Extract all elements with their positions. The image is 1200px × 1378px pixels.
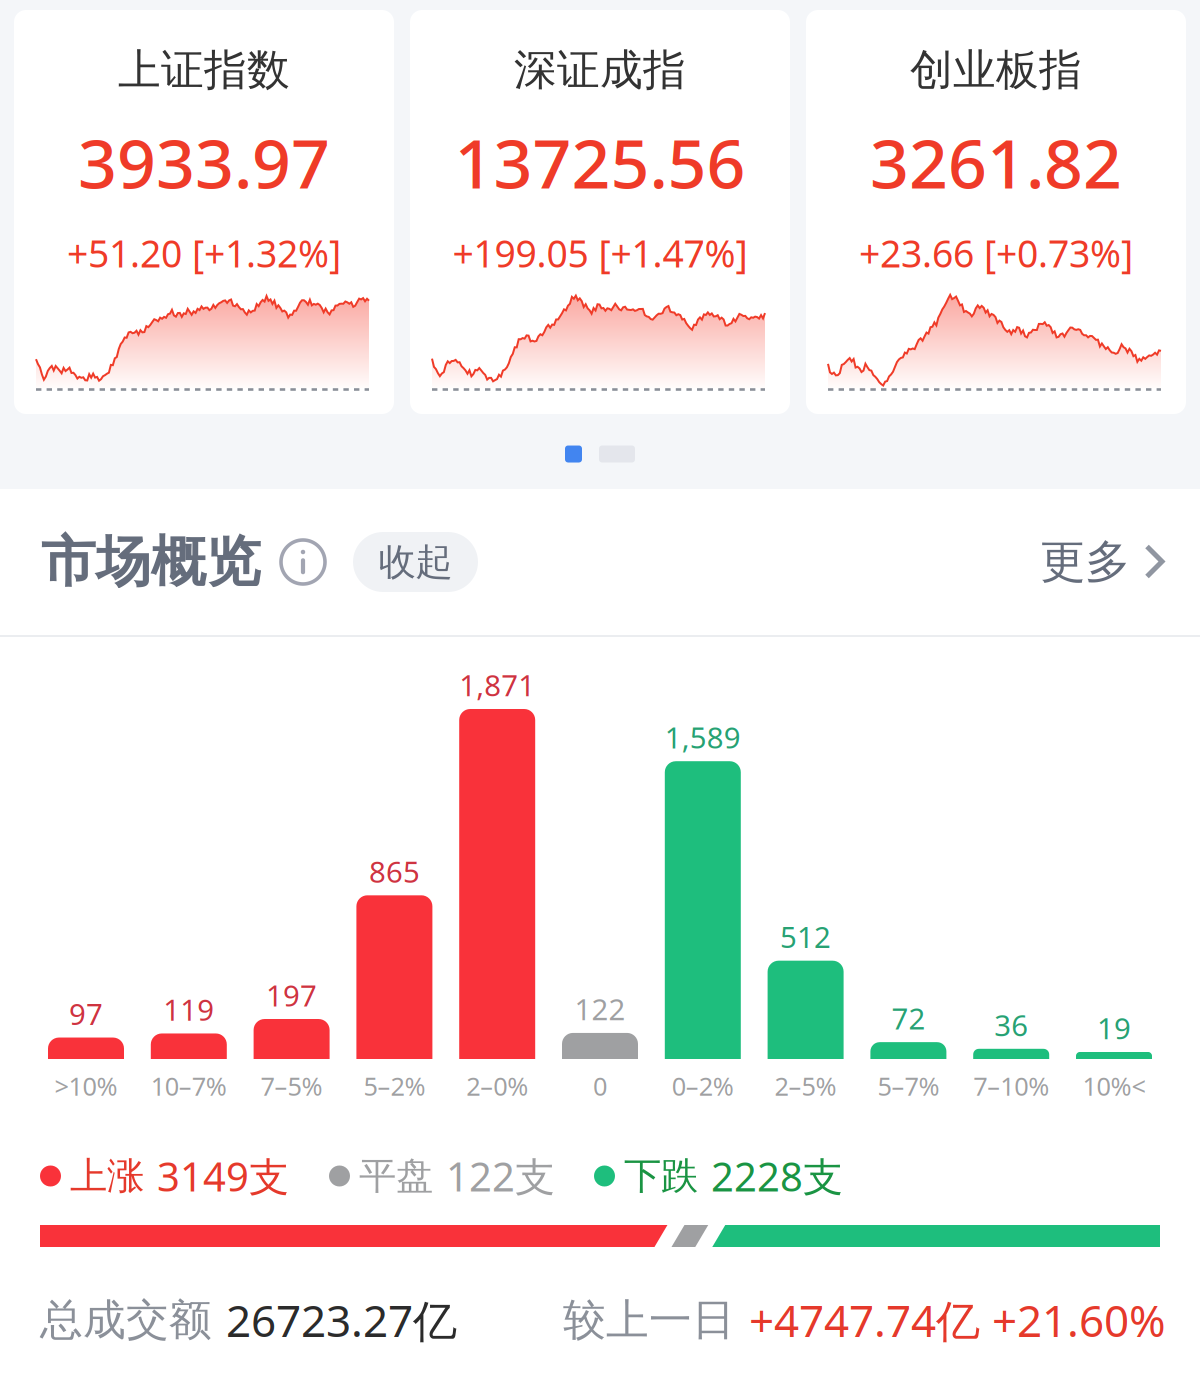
button[interactable]: 更多 (1030, 522, 1175, 602)
staticText: 512 (780, 917, 831, 956)
staticText: +199.05 [+1.47%] (452, 228, 747, 278)
button[interactable]: 上证指数 (14, 10, 394, 414)
staticText: 2–0% (466, 1069, 528, 1103)
staticText: 0–2% (672, 1069, 734, 1103)
staticText: +21.60% (992, 1291, 1166, 1349)
staticText: +23.66 [+0.73%] (859, 228, 1133, 278)
staticText: 2228支 (711, 1149, 843, 1202)
staticText: 26723.27亿 (226, 1291, 457, 1349)
staticText: 下跌 (624, 1153, 698, 1199)
staticText: +51.20 [+1.32%] (67, 228, 341, 278)
staticText: 收起 (378, 539, 452, 585)
staticText: 创业板指 (910, 44, 1082, 96)
button[interactable]: 深证成指 (410, 10, 790, 414)
staticText: 19 (1097, 1008, 1131, 1047)
staticText: 3261.82 (870, 117, 1122, 207)
staticText: 865 (369, 852, 420, 891)
staticText: 0 (593, 1069, 607, 1103)
staticText: 7–5% (261, 1069, 323, 1103)
staticText: 3933.97 (78, 117, 330, 207)
staticText: 122支 (446, 1149, 555, 1202)
staticText: 总成交额 (40, 1294, 212, 1346)
staticText: 市场概览 (41, 528, 261, 595)
staticText: 122 (574, 989, 625, 1028)
button[interactable]: 指标说明 (278, 537, 328, 587)
staticText: 较上一日 (563, 1294, 735, 1346)
staticText: 深证成指 (514, 44, 686, 96)
staticText: +4747.74亿 (749, 1291, 980, 1349)
staticText: 3149支 (157, 1149, 289, 1202)
staticText: 5–2% (363, 1069, 425, 1103)
staticText: 7–10% (973, 1069, 1049, 1103)
staticText: 36 (994, 1005, 1028, 1044)
staticText: 97 (69, 994, 103, 1033)
staticText: 上涨 (70, 1153, 144, 1199)
staticText: 2–5% (775, 1069, 837, 1103)
staticText: 1,589 (665, 718, 741, 757)
staticText: 上证指数 (118, 44, 290, 96)
button[interactable]: 收起 (353, 532, 478, 592)
staticText: 13725.56 (454, 117, 745, 207)
staticText: 更多 (1040, 534, 1130, 590)
staticText: >10% (54, 1069, 117, 1103)
staticText: 1,871 (459, 665, 535, 704)
staticText: 平盘 (359, 1153, 433, 1199)
staticText: 119 (163, 990, 214, 1029)
staticText: 72 (891, 999, 925, 1038)
staticText: 10–7% (151, 1069, 227, 1103)
staticText: 197 (266, 975, 317, 1014)
staticText: 5–7% (877, 1069, 939, 1103)
button[interactable]: 创业板指 (806, 10, 1186, 414)
staticText: 10%< (1082, 1069, 1145, 1103)
